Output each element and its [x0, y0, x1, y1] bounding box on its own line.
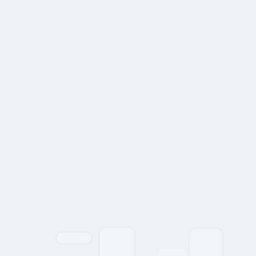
button[interactable]: Tag	[56, 232, 92, 244]
